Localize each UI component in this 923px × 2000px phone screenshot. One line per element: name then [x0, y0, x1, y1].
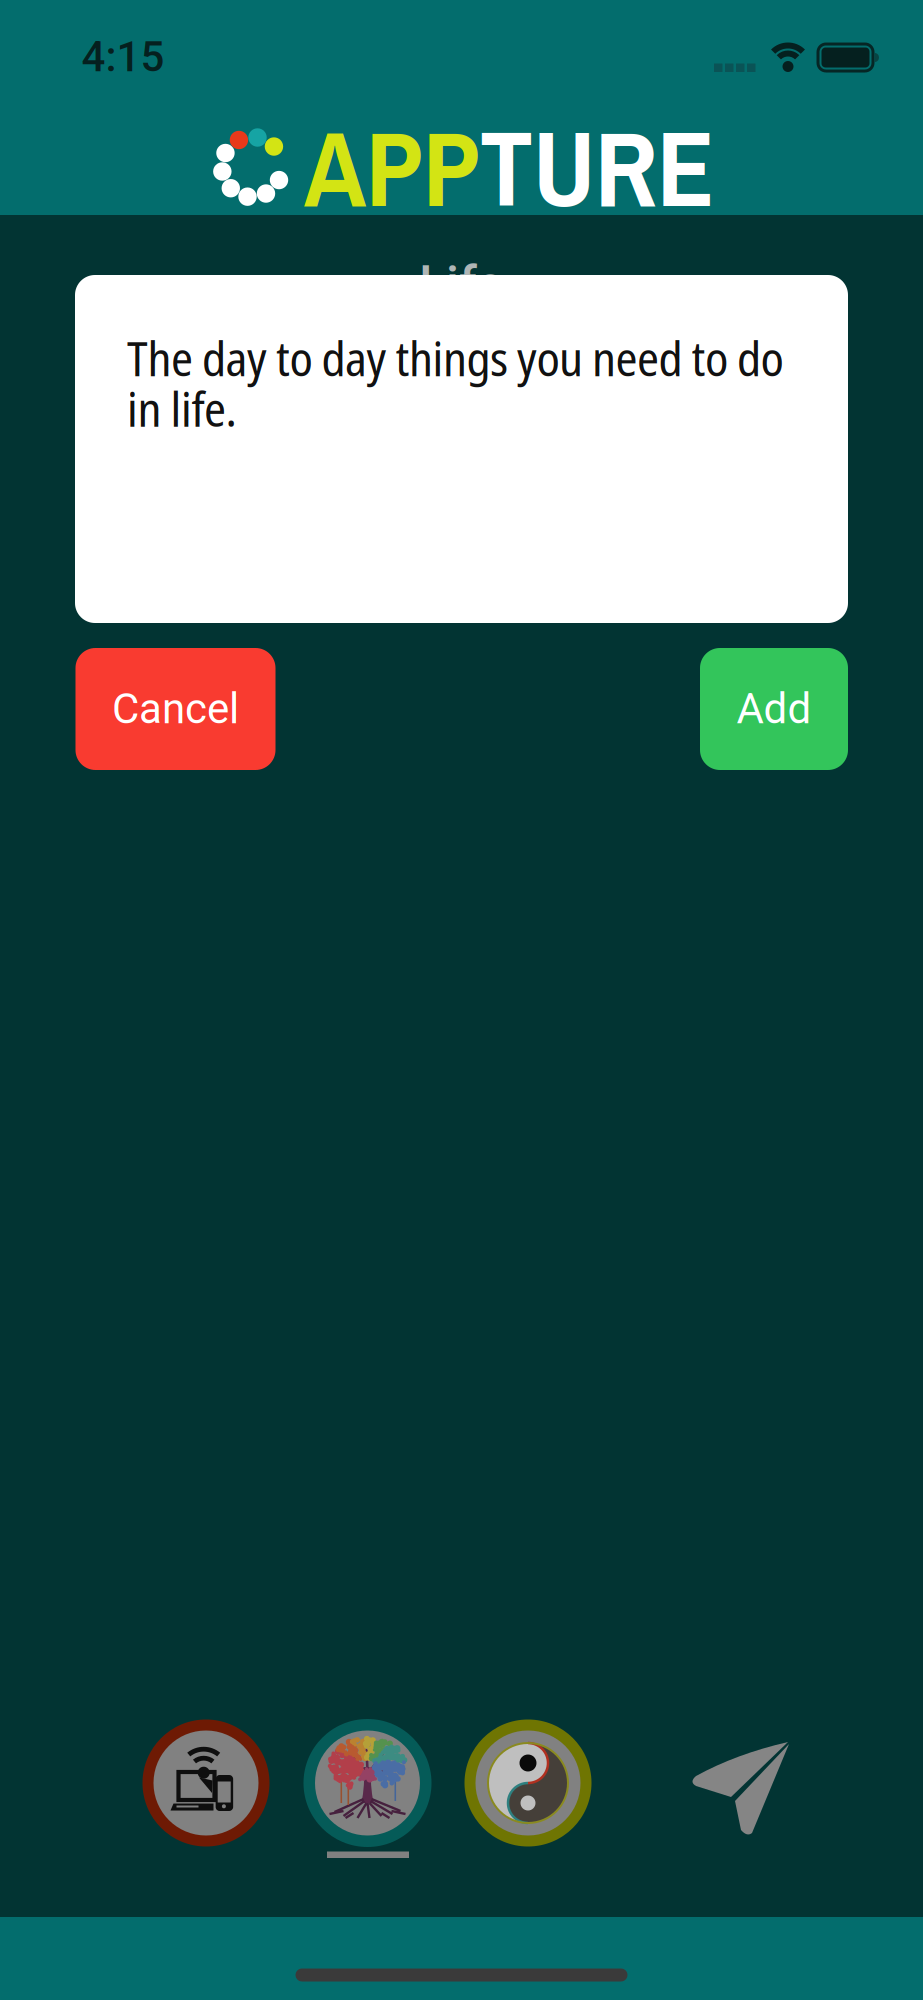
button[interactable]: Send [686, 1734, 796, 1844]
button[interactable]: Tech [142, 1719, 269, 1846]
button[interactable]: Life [303, 1719, 431, 1847]
staticText: APP [304, 97, 480, 239]
staticText: Add [736, 684, 811, 734]
staticText: The day to day things you need to do in … [127, 332, 783, 433]
button[interactable]: Cancel [75, 648, 275, 770]
staticText: Life [419, 254, 503, 314]
button[interactable]: Add [700, 648, 848, 770]
staticText: Cancel [112, 684, 239, 734]
staticText: TURE [480, 97, 714, 239]
button[interactable]: Balance [464, 1719, 591, 1846]
staticText: 4:15 [81, 32, 164, 82]
